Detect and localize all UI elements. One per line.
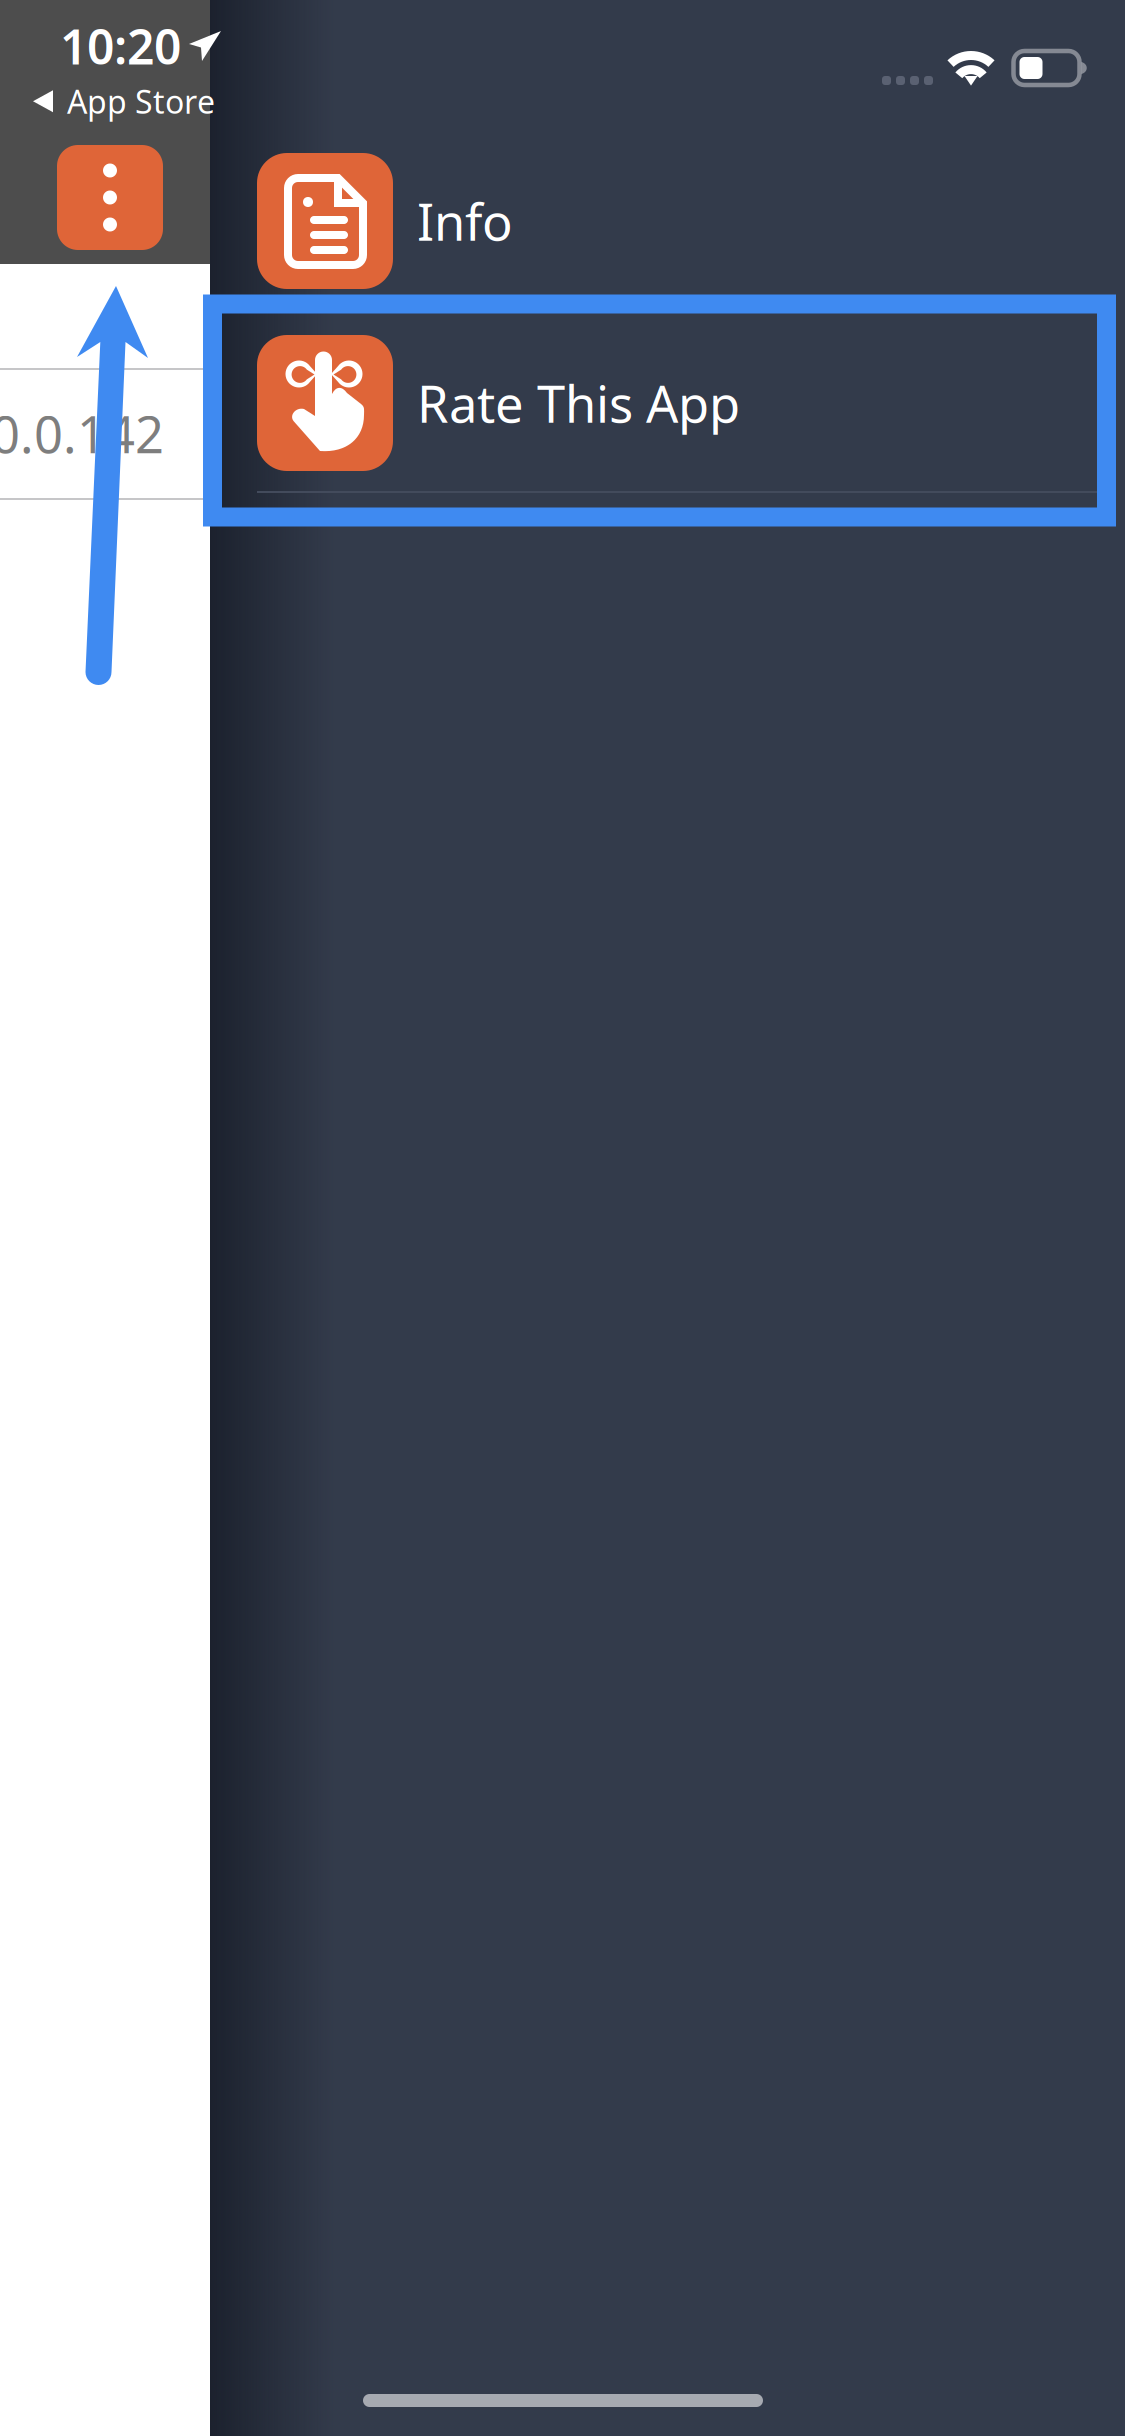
staticText: v0.0.142 (0, 400, 164, 467)
staticText: Rate This App (417, 369, 740, 437)
staticText: Info (417, 187, 513, 255)
button[interactable]: More options (57, 145, 163, 250)
button[interactable]: Info (210, 130, 1125, 312)
staticText: App Store (67, 80, 215, 122)
staticText: 10:20 (60, 14, 181, 78)
button[interactable]: Rate This App (210, 312, 1125, 494)
